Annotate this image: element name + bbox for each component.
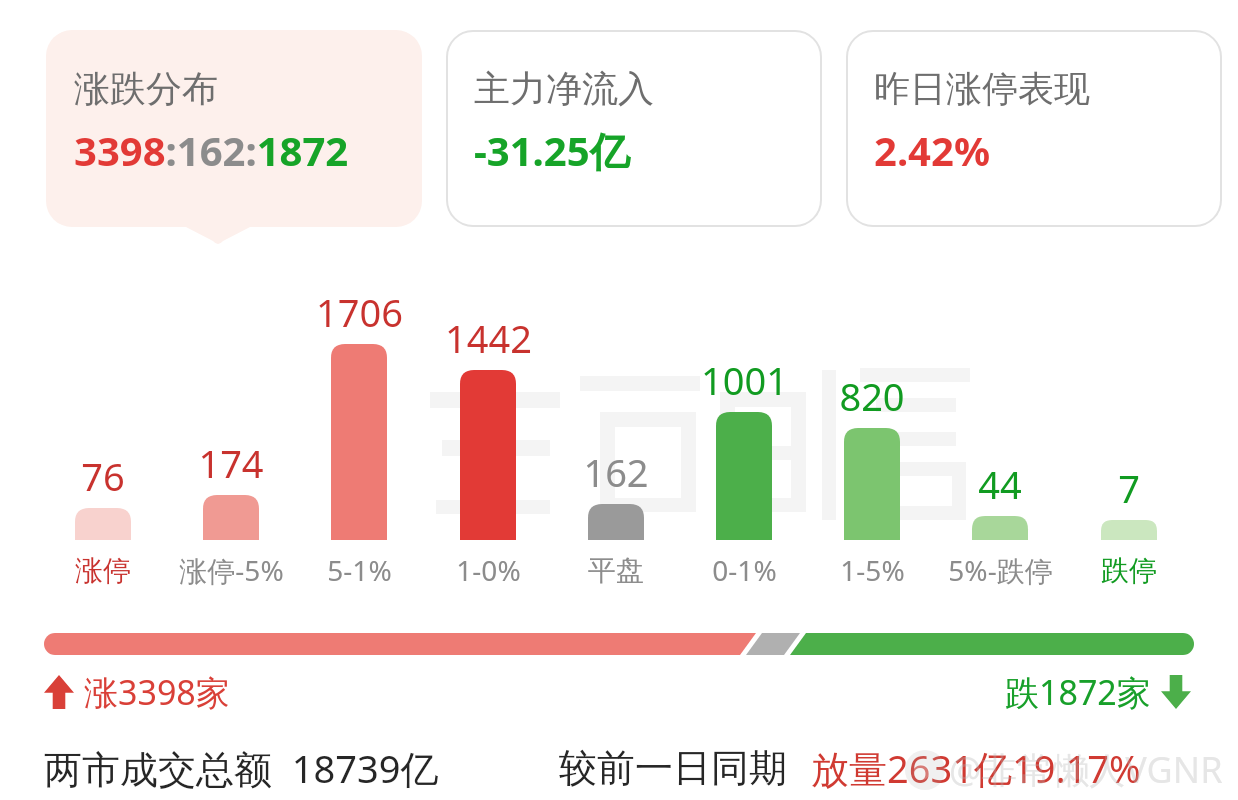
staticText: 1706: [316, 286, 403, 338]
staticText: @非常懒人VGNR: [949, 745, 1223, 794]
staticText: 涨3398家: [84, 669, 230, 715]
staticText: 820: [839, 370, 905, 422]
staticText: 76: [81, 450, 125, 502]
staticText: 1442: [445, 312, 532, 364]
staticText: 5-1%: [327, 551, 392, 589]
staticText: 3398:162:1872: [74, 123, 349, 177]
staticText: 1-0%: [456, 551, 521, 589]
staticText: 平盘: [588, 553, 644, 588]
staticText: 涨停-5%: [179, 551, 284, 589]
staticText: 162: [583, 446, 649, 498]
staticText: 44: [978, 458, 1022, 510]
button[interactable]: [44, 633, 1194, 655]
staticText: 两市成交总额 18739亿: [44, 742, 439, 794]
staticText: 1-5%: [840, 551, 905, 589]
button[interactable]: 两市成交总额 18739亿: [44, 742, 1141, 794]
staticText: 跌1872家: [1005, 669, 1151, 715]
staticText: 放量2631亿19.17%: [811, 742, 1141, 794]
staticText: 1001: [701, 354, 788, 406]
staticText: 0-1%: [712, 551, 777, 589]
button[interactable]: 跌1872家: [1005, 668, 1191, 716]
staticText: 涨跌分布: [74, 66, 218, 111]
button[interactable]: 昨日涨停表现: [846, 30, 1222, 227]
staticText: 昨日涨停表现: [874, 66, 1090, 111]
staticText: 174: [198, 437, 264, 489]
staticText: 较前一日同期: [559, 744, 787, 792]
staticText: -31.25亿: [474, 123, 630, 178]
button[interactable]: 涨跌分布: [46, 30, 422, 247]
button[interactable]: Advancing stocks: [44, 668, 230, 716]
other: Declining stocks: [1161, 675, 1191, 709]
staticText: 7: [1118, 462, 1140, 514]
staticText: 2.42%: [874, 123, 990, 177]
staticText: 跌停: [1101, 553, 1157, 588]
other: Advancing stocks: [44, 675, 74, 709]
staticText: 5%-跌停: [948, 551, 1053, 589]
staticText: 涨停: [75, 553, 131, 588]
button[interactable]: 主力净流入: [446, 30, 822, 227]
staticText: 主力净流入: [474, 66, 654, 111]
